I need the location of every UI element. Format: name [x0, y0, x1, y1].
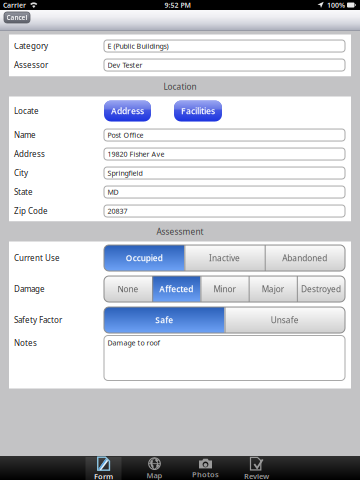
staticText: 20837 [107, 206, 127, 216]
staticText: Destroyed [301, 283, 341, 295]
staticText: Inactive [209, 252, 240, 264]
button[interactable]: Minor [200, 276, 249, 302]
staticText: Assessor [14, 60, 48, 70]
staticText: Cancel [6, 13, 27, 22]
staticText: 9:52 PM [164, 0, 190, 10]
button[interactable]: Abandoned [265, 245, 345, 271]
button[interactable]: Address [104, 100, 151, 121]
staticText: Occupied [126, 252, 163, 264]
button[interactable]: Review [238, 457, 274, 480]
staticText: Minor [213, 283, 235, 295]
staticText: Address [14, 149, 45, 159]
staticText: Map [146, 470, 162, 480]
button[interactable]: Facilities [174, 100, 222, 121]
staticText: Dev Tester [107, 60, 142, 70]
staticText: Affected [159, 283, 193, 295]
staticText: 19820 Fisher Ave [107, 149, 164, 159]
staticText: Form [94, 471, 113, 480]
button[interactable]: Map [136, 457, 172, 480]
staticText: Springfield [107, 168, 142, 178]
staticText: Category [14, 41, 48, 51]
button[interactable]: Form [85, 457, 121, 480]
staticText: Notes [14, 337, 37, 348]
staticText: Current Use [14, 253, 60, 263]
staticText: Zip Code [14, 206, 48, 216]
staticText: Address [111, 105, 144, 117]
button[interactable]: Occupied [104, 245, 184, 271]
button[interactable]: Destroyed [297, 276, 345, 302]
staticText: Name [14, 130, 36, 140]
staticText: None [118, 283, 139, 295]
staticText: Assessment [156, 226, 203, 237]
staticText: Major [262, 283, 284, 295]
staticText: Post Office [107, 130, 143, 140]
staticText: Location [163, 81, 196, 92]
staticText: Locate [14, 106, 39, 116]
staticText: 100% [327, 0, 345, 10]
button[interactable]: Major [249, 276, 297, 302]
button[interactable]: None [104, 276, 152, 302]
staticText: City [14, 168, 28, 178]
staticText: Abandoned [282, 252, 327, 264]
staticText: Damage [14, 284, 45, 294]
staticText: Damage to roof [107, 338, 159, 348]
button[interactable]: Affected [152, 276, 200, 302]
staticText: Safety Factor [14, 315, 62, 325]
button[interactable]: Cancel [4, 12, 30, 23]
staticText: State [14, 187, 33, 197]
staticText: Carrier [3, 0, 26, 10]
staticText: Review [244, 471, 269, 480]
staticText: E (Public Buildings) [107, 41, 168, 51]
button[interactable]: Safe [104, 307, 224, 333]
staticText: Facilities [181, 105, 215, 117]
button[interactable]: Unsafe [224, 307, 345, 333]
staticText: Photos [192, 469, 219, 479]
staticText: Unsafe [271, 314, 299, 326]
button[interactable]: Inactive [184, 245, 265, 271]
staticText: MD [107, 187, 118, 197]
staticText: Safe [155, 314, 173, 326]
button[interactable]: Photos [187, 457, 223, 480]
